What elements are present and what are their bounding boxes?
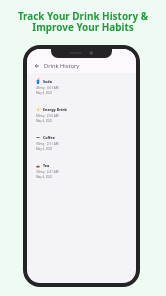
staticText: Drink History	[44, 62, 80, 70]
staticText: Track Your Drink History & Improve Your …	[0, 9, 166, 34]
staticText: 80mg · 2:55 AM	[36, 114, 59, 118]
staticText: Tea	[43, 163, 50, 168]
staticText: Energy Drink	[43, 107, 67, 112]
button[interactable]: Soda	[27, 78, 136, 106]
staticText: 90mg · 2:51 AM	[36, 142, 59, 146]
button[interactable]: Tea	[27, 162, 136, 190]
staticText: May 4, 2025	[36, 119, 53, 123]
staticText: Soda	[43, 79, 52, 84]
button[interactable]: Back	[33, 62, 41, 70]
staticText: 45mg · 3:01 AM	[36, 86, 59, 90]
staticText: Coffee	[43, 135, 56, 140]
staticText: 30mg · 2:41 AM	[36, 170, 59, 174]
staticText: May 4, 2025	[36, 147, 53, 151]
staticText: May 4, 2025	[36, 175, 53, 179]
button[interactable]: Energy Drink	[27, 106, 136, 134]
button[interactable]: Coffee	[27, 134, 136, 162]
staticText: May 4, 2025	[36, 91, 53, 95]
